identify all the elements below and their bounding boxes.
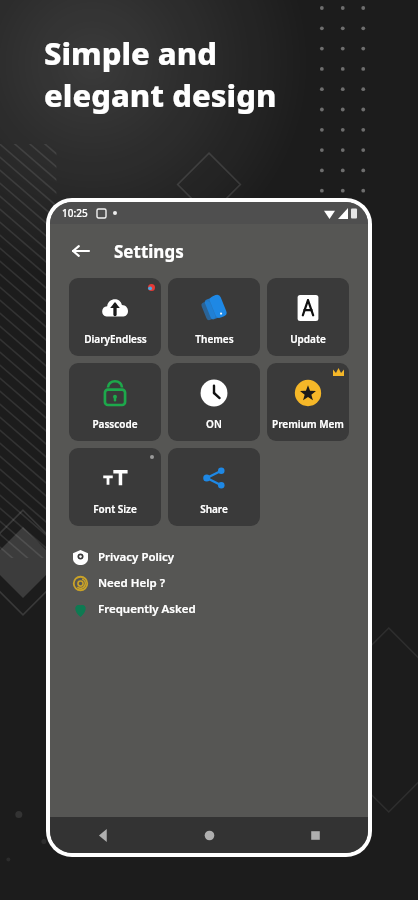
staticText: elegant design	[44, 74, 277, 116]
staticText: Passcode	[92, 417, 138, 431]
staticText: Simple and	[44, 32, 217, 74]
staticText: Premium Mem	[272, 417, 344, 431]
button[interactable]: Update	[267, 278, 349, 356]
button[interactable]: ON	[168, 363, 260, 441]
staticText: Update	[290, 332, 326, 346]
staticText: DiaryEndless	[84, 332, 147, 346]
button[interactable]: Back	[50, 817, 156, 853]
staticText: 10:25	[62, 206, 88, 220]
button[interactable]: Recents	[262, 817, 368, 853]
button[interactable]: Privacy Policy	[72, 544, 368, 570]
button[interactable]: Home	[156, 817, 262, 853]
staticText: ON	[206, 417, 222, 431]
button[interactable]: DiaryEndless	[69, 278, 161, 356]
staticText: Frequently Asked	[98, 601, 196, 617]
staticText: Need Help ?	[98, 575, 165, 591]
staticText: Themes	[195, 332, 234, 346]
staticText: Share	[200, 502, 228, 516]
button[interactable]: Frequently Asked	[72, 596, 368, 622]
button[interactable]: Font Size	[69, 448, 161, 526]
button[interactable]: Premium Mem	[267, 363, 349, 441]
staticText: Font Size	[93, 502, 137, 516]
button[interactable]: Share	[168, 448, 260, 526]
button[interactable]: Need Help ?	[72, 570, 368, 596]
button[interactable]: Themes	[168, 278, 260, 356]
staticText: Settings	[114, 240, 184, 263]
button[interactable]: Back	[64, 234, 98, 268]
button[interactable]: Passcode	[69, 363, 161, 441]
staticText: Privacy Policy	[98, 549, 175, 565]
